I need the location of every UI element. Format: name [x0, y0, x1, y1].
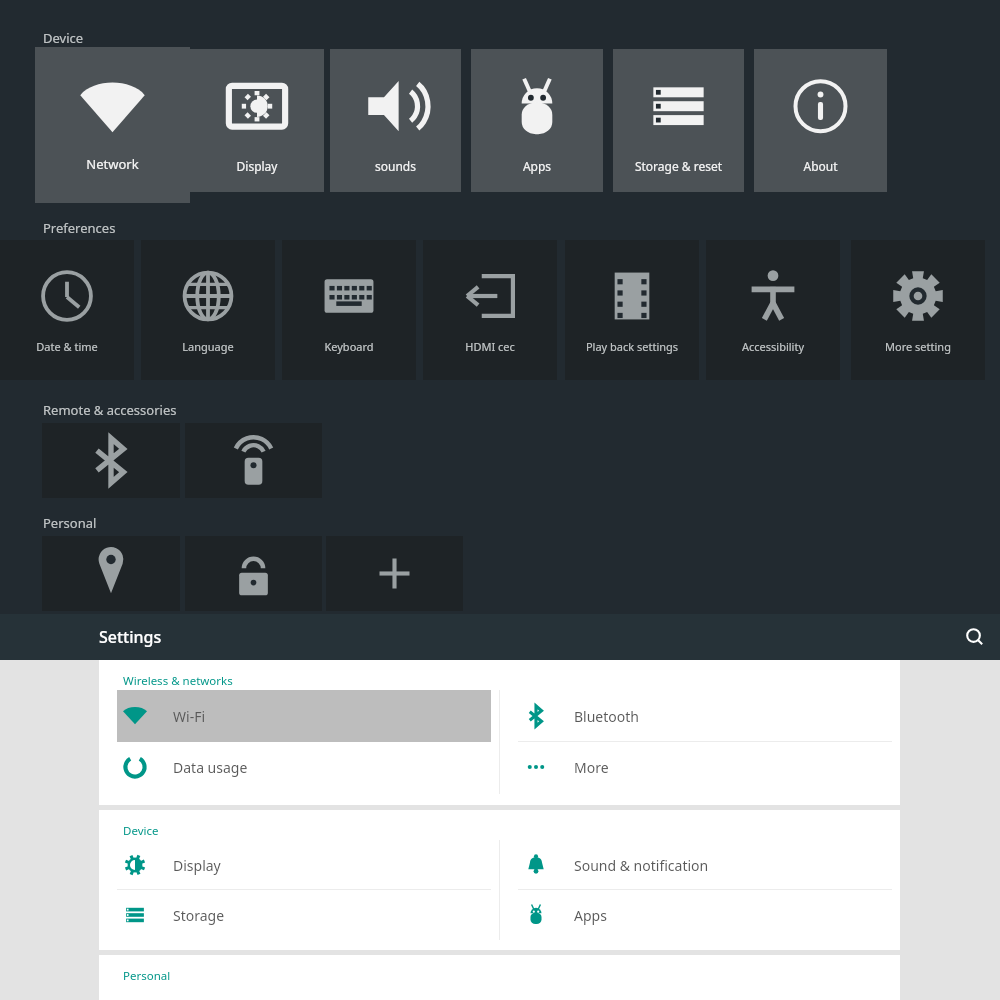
staticText: HDMI cec	[423, 339, 557, 354]
button[interactable]: Storage	[99, 890, 499, 940]
button[interactable]: Wi-Fi	[99, 690, 499, 742]
staticText: Data usage	[173, 758, 248, 777]
staticText: About	[754, 158, 887, 174]
staticText: Sound & notification	[574, 856, 709, 875]
button[interactable]: Display	[99, 840, 499, 890]
staticText: Date & time	[0, 339, 134, 354]
staticText: Play back settings	[565, 339, 699, 354]
button[interactable]: Date & time	[0, 240, 134, 380]
button[interactable]: Network	[35, 47, 190, 203]
button[interactable]: Search	[958, 620, 992, 654]
staticText: Storage & reset	[613, 158, 744, 174]
staticText: Device	[43, 29, 84, 47]
staticText: Apps	[574, 906, 607, 925]
button[interactable]: Display	[190, 49, 324, 192]
staticText: More setting	[851, 339, 985, 354]
staticText: Language	[141, 339, 275, 354]
button[interactable]: Data usage	[99, 742, 499, 792]
staticText: More	[574, 758, 609, 777]
button[interactable]: Bluetooth	[500, 690, 900, 742]
button[interactable]: Location	[42, 536, 180, 611]
staticText: Wireless & networks	[123, 673, 233, 689]
button[interactable]: Remote	[185, 423, 322, 498]
button[interactable]: Language	[141, 240, 275, 380]
button[interactable]: Apps	[471, 49, 603, 192]
staticText: Display	[173, 856, 221, 875]
staticText: Wi-Fi	[173, 707, 206, 726]
staticText: Bluetooth	[574, 707, 639, 726]
button[interactable]: More setting	[851, 240, 985, 380]
button[interactable]: Accessibility	[706, 240, 840, 380]
staticText: Preferences	[43, 219, 116, 237]
staticText: Apps	[471, 158, 603, 174]
staticText: Personal	[43, 514, 97, 532]
staticText: Remote & accessories	[43, 401, 177, 419]
staticText: Storage	[173, 906, 225, 925]
button[interactable]: About	[754, 49, 887, 192]
button[interactable]: More	[500, 742, 900, 792]
staticText: Settings	[99, 626, 162, 648]
staticText: Keyboard	[282, 339, 416, 354]
button[interactable]: Keyboard	[282, 240, 416, 380]
staticText: Network	[35, 155, 190, 173]
button[interactable]: Sound & notification	[500, 840, 900, 890]
button[interactable]: Play back settings	[565, 240, 699, 380]
button[interactable]: HDMI cec	[423, 240, 557, 380]
button[interactable]: Add account	[326, 536, 463, 611]
staticText: sounds	[330, 158, 461, 174]
staticText: Accessibility	[706, 339, 840, 354]
staticText: Device	[123, 823, 159, 839]
button[interactable]: Storage & reset	[613, 49, 744, 192]
staticText: Display	[190, 158, 324, 174]
staticText: Personal	[123, 968, 171, 984]
button[interactable]: Apps	[500, 890, 900, 940]
button[interactable]: Bluetooth	[42, 423, 180, 498]
button[interactable]: sounds	[330, 49, 461, 192]
button[interactable]: Security	[185, 536, 322, 611]
